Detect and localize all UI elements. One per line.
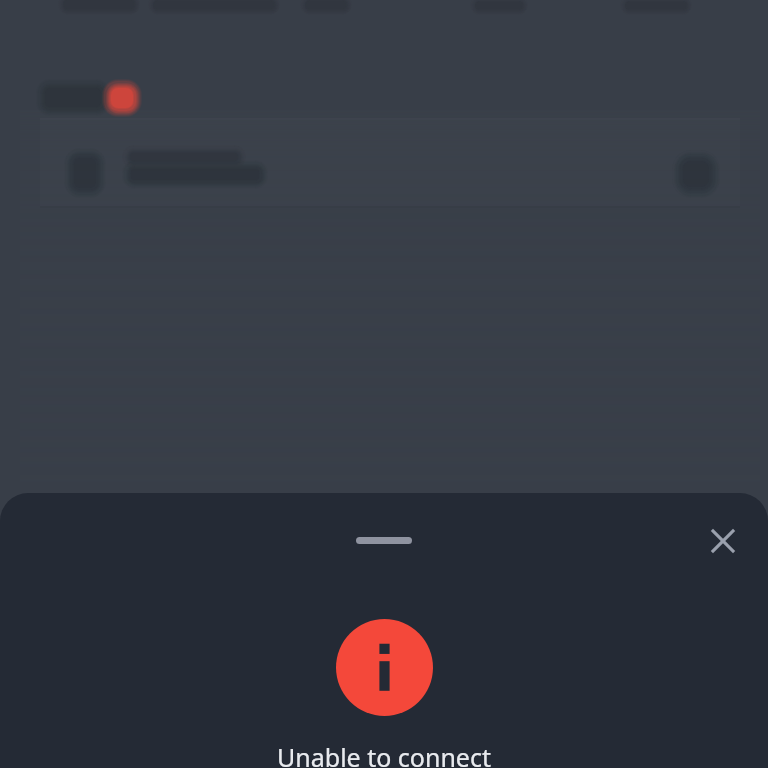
staticText: Unable to connect	[277, 740, 491, 768]
button[interactable]: Close	[701, 519, 745, 563]
button[interactable]	[332, 527, 436, 554]
